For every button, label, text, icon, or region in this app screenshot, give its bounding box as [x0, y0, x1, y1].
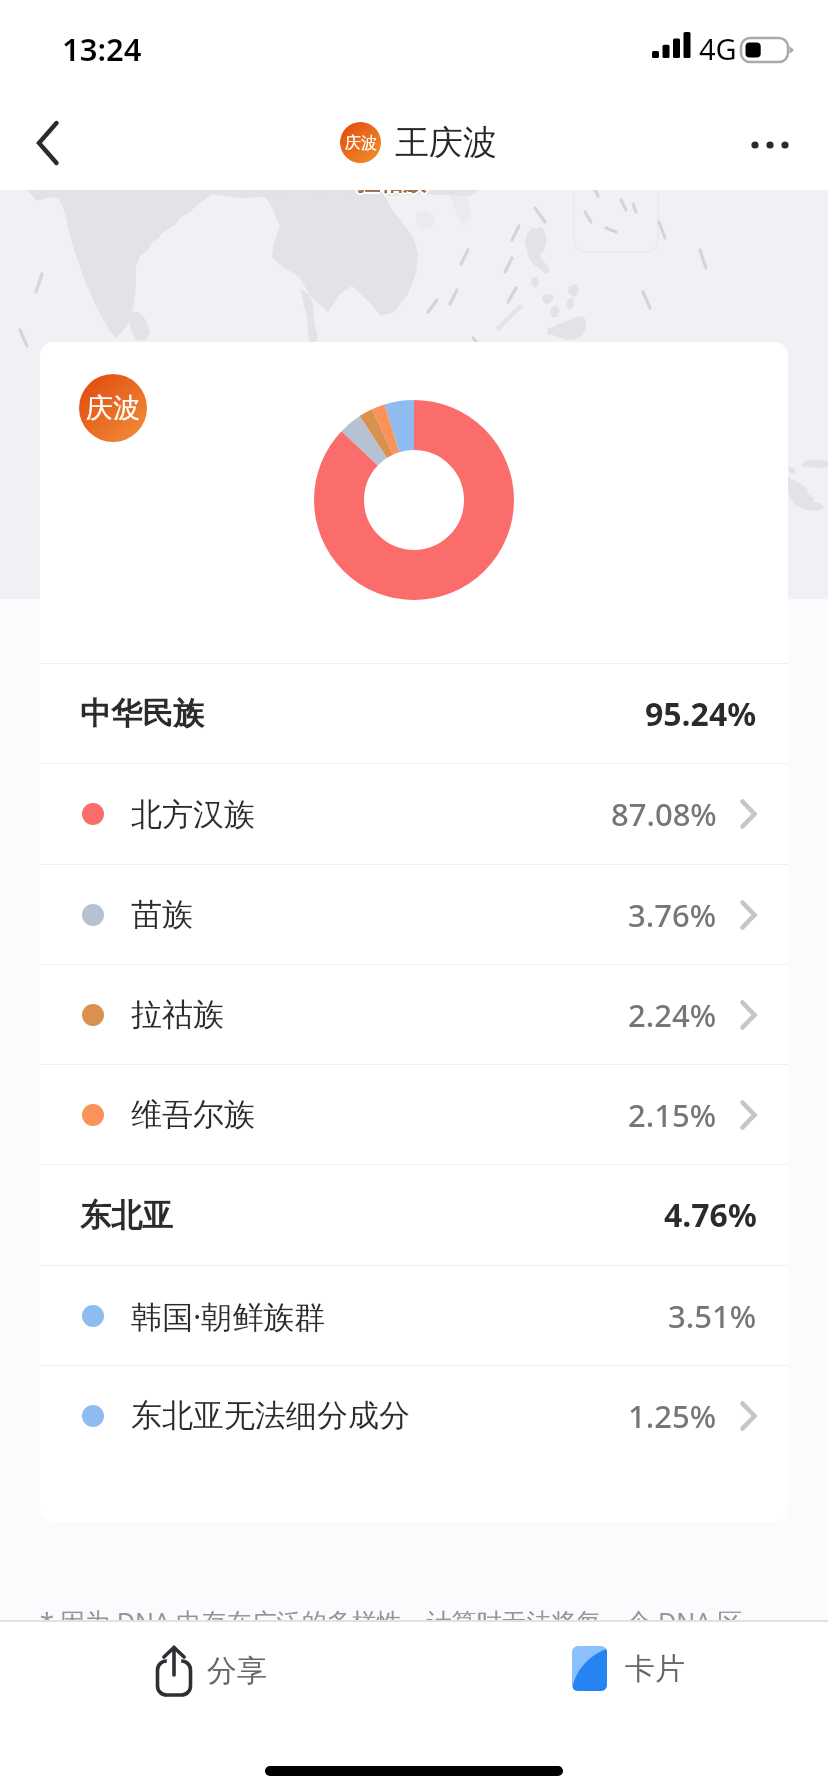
- staticText: 4G: [699, 29, 737, 68]
- button[interactable]: 东北亚无法细分成分: [40, 1366, 788, 1465]
- staticText: 87.08%: [611, 793, 717, 835]
- staticText: 拉祜族: [355, 190, 424, 197]
- staticText: 拉祜族: [359, 190, 428, 197]
- staticText: 拉祜族: [357, 190, 426, 199]
- staticText: 拉祜族: [357, 190, 426, 197]
- staticText: 4.76%: [664, 1193, 757, 1237]
- staticText: 2.24%: [628, 994, 717, 1036]
- staticText: 王庆波: [395, 121, 497, 164]
- button[interactable]: Back: [10, 105, 88, 183]
- button[interactable]: 卡片: [560, 1638, 697, 1699]
- button[interactable]: More options: [714, 107, 786, 179]
- button[interactable]: 分享: [144, 1638, 279, 1704]
- button[interactable]: 拉祜族: [40, 965, 788, 1064]
- staticText: 拉祜族: [355, 190, 424, 197]
- staticText: 拉祜族: [357, 190, 426, 197]
- staticText: 维吾尔族: [131, 1095, 255, 1134]
- staticText: 拉祜族: [355, 190, 424, 197]
- staticText: 庆波: [86, 391, 140, 425]
- staticText: 苗族: [131, 895, 193, 934]
- staticText: 拉祜族: [357, 190, 426, 197]
- staticText: 3.76%: [628, 894, 717, 936]
- staticText: 北方汉族: [131, 795, 255, 834]
- staticText: 分享: [207, 1652, 267, 1690]
- staticText: * 因为 DNA 中存在广泛的多样性，计算时无法将每一个 DNA 区: [40, 1604, 743, 1638]
- button[interactable]: 苗族: [40, 865, 788, 964]
- button[interactable]: 韩国·朝鲜族群: [40, 1266, 788, 1365]
- staticText: 中华民族: [80, 694, 204, 733]
- staticText: 2.15%: [628, 1094, 717, 1136]
- button[interactable]: 中华民族: [40, 664, 788, 763]
- staticText: 拉祜族: [131, 995, 224, 1034]
- button[interactable]: 北方汉族: [40, 764, 788, 864]
- staticText: 拉祜族: [359, 190, 428, 197]
- staticText: 1.25%: [628, 1395, 717, 1437]
- staticText: 13:24: [62, 28, 142, 70]
- button[interactable]: 东北亚: [40, 1165, 788, 1265]
- staticText: 3.51%: [668, 1295, 757, 1337]
- staticText: 庆波: [345, 133, 377, 153]
- staticText: 95.24%: [645, 692, 757, 736]
- button[interactable]: 维吾尔族: [40, 1065, 788, 1164]
- staticText: 卡片: [625, 1650, 685, 1688]
- staticText: 拉祜族: [359, 190, 428, 197]
- staticText: 拉祜族: [357, 190, 426, 195]
- staticText: 东北亚: [80, 1196, 173, 1235]
- staticText: 韩国·朝鲜族群: [131, 1295, 326, 1337]
- staticText: 东北亚无法细分成分: [131, 1396, 410, 1435]
